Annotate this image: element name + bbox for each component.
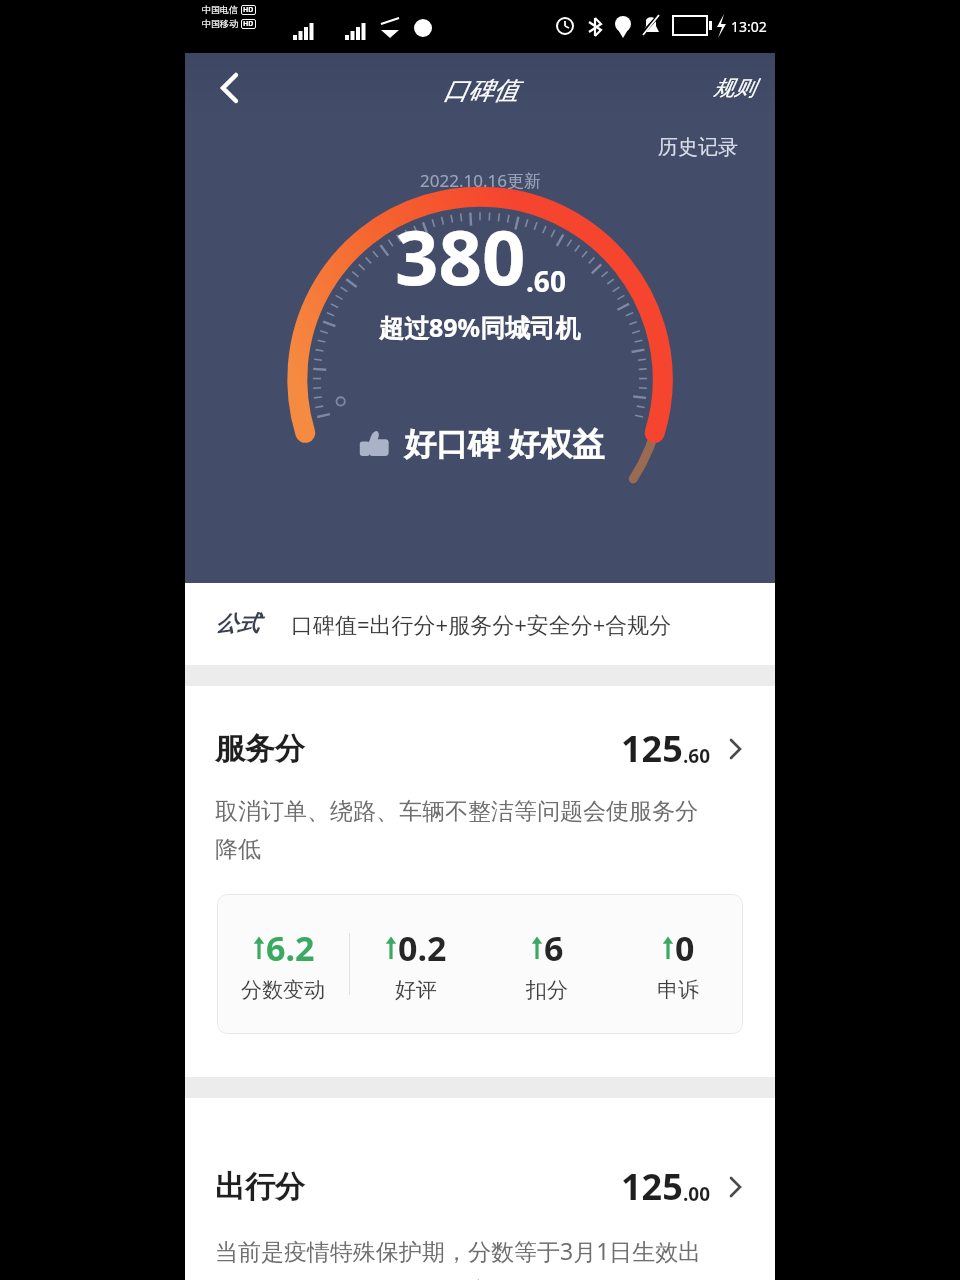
staticText: 口碑值 — [443, 75, 518, 106]
staticText: .60 — [526, 262, 566, 300]
button[interactable]: 公式 — [185, 583, 775, 665]
staticText: 好评 — [395, 977, 437, 1003]
staticText: 2022.10.16更新 — [420, 169, 541, 192]
staticText: 分数变动 — [241, 977, 325, 1003]
button[interactable]: 规则 — [707, 69, 761, 107]
button[interactable]: 服务分 — [185, 724, 775, 773]
staticText: 13:02 — [731, 17, 767, 36]
staticText: 服务分 — [215, 730, 305, 768]
staticText: 6 — [544, 925, 564, 971]
button[interactable]: Back — [205, 64, 253, 112]
staticText: 125 — [621, 724, 683, 773]
button[interactable]: 6.2 — [217, 894, 743, 1034]
staticText: 中国电信 — [202, 4, 238, 15]
staticText: .60 — [683, 743, 711, 769]
staticText: 出行分 — [215, 1168, 305, 1206]
staticText: 6.2 — [266, 925, 315, 971]
staticText: 规则 — [713, 75, 755, 101]
staticText: HD — [243, 19, 254, 29]
staticText: 中国移动 — [202, 18, 238, 29]
staticText: HD — [243, 5, 254, 15]
staticText: 申诉 — [657, 977, 699, 1003]
staticText: 380 — [395, 204, 526, 308]
staticText: 好口碑 好权益 — [404, 421, 605, 465]
staticText: 口碑值=出行分+服务分+安全分+合规分 — [291, 609, 672, 639]
staticText: 当前是疫情特殊保护期，分数等于3月1日生效出 行分、上月出行分、本月实际出行分 … — [215, 1235, 745, 1280]
staticText: 扣分 — [526, 977, 568, 1003]
staticText: 125 — [621, 1162, 683, 1211]
staticText: 取消订单、绕路、车辆不整洁等问题会使服务分 降低 — [215, 797, 745, 864]
button[interactable]: 历史记录 — [654, 131, 742, 164]
staticText: 0.2 — [398, 925, 447, 971]
staticText: 0 — [675, 925, 695, 971]
staticText: 历史记录 — [658, 135, 738, 160]
staticText: 超过89%同城司机 — [379, 310, 581, 344]
staticText: .00 — [683, 1181, 711, 1207]
button[interactable]: 出行分 — [185, 1162, 775, 1211]
staticText: 公式 — [215, 610, 259, 638]
